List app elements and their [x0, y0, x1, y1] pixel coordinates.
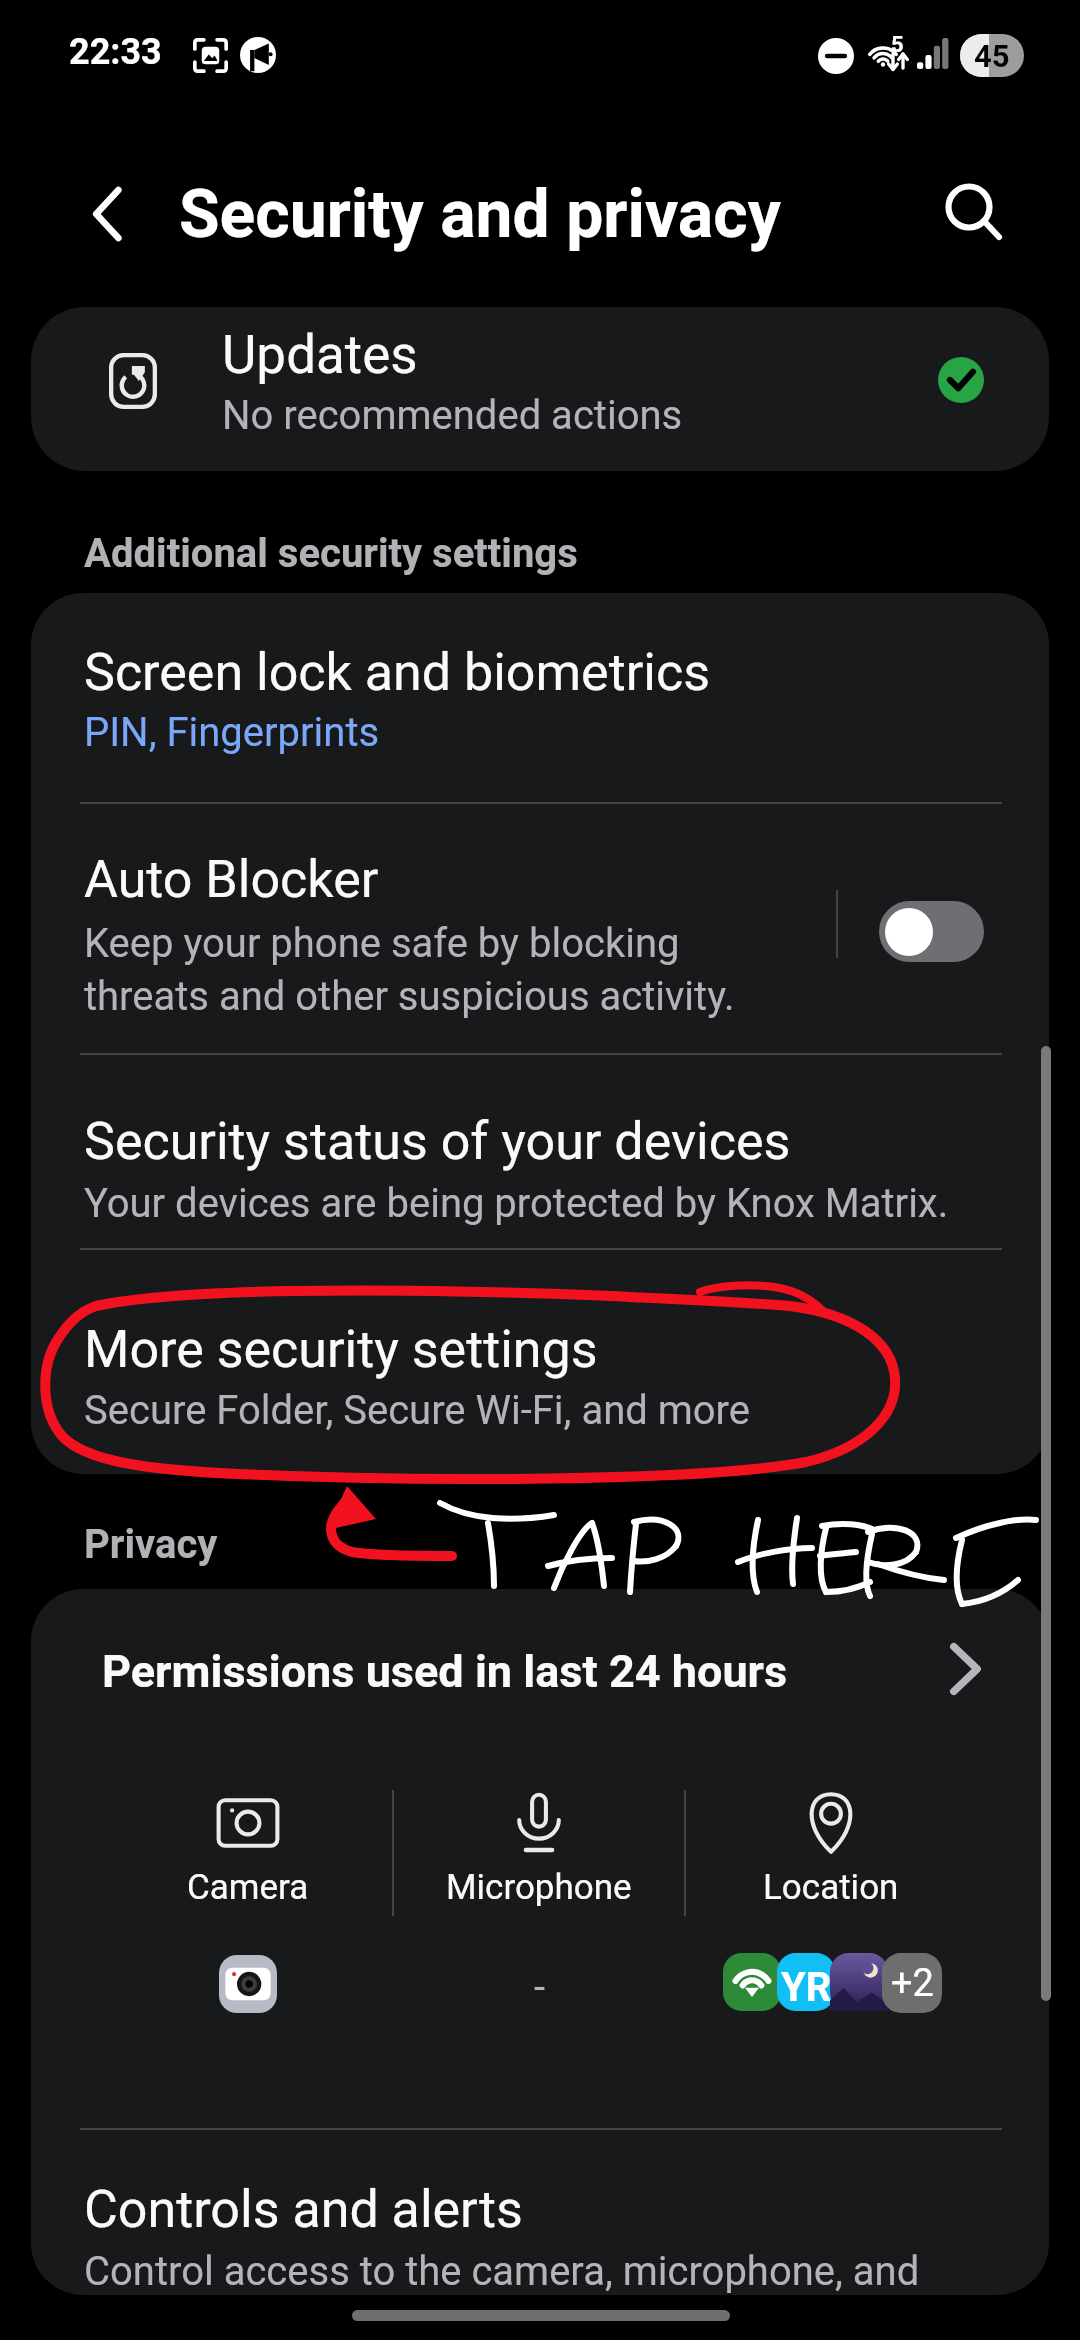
button[interactable]: Search [922, 160, 1018, 256]
staticText: Additional security settings [84, 530, 578, 577]
staticText: No recommended actions [222, 392, 683, 439]
staticText: Updates [222, 324, 418, 386]
staticText: Your devices are being protected by Knox… [84, 1180, 949, 1227]
staticText: Security and privacy [179, 176, 781, 253]
staticText: Permissions used in last 24 hours [102, 1645, 788, 1698]
button[interactable]: Navigate up [59, 166, 155, 262]
button[interactable]: More security settings [31, 1250, 1049, 1474]
staticText: Location [763, 1867, 899, 1908]
button[interactable]: Updates [31, 307, 1049, 471]
staticText: Screen lock and biometrics [84, 642, 711, 703]
staticText: YR [781, 1964, 832, 2011]
button[interactable]: Permissions used in last 24 hours [31, 1589, 1049, 1739]
staticText: Privacy [84, 1521, 218, 1568]
button[interactable]: Auto Blocker toggle [879, 901, 984, 962]
staticText: +2 [891, 1961, 934, 2006]
button[interactable]: Auto Blocker [31, 804, 831, 1053]
staticText: Secure Folder, Secure Wi-Fi, and more [84, 1387, 750, 1434]
staticText: Control access to the camera, microphone… [84, 2248, 920, 2295]
staticText: Auto Blocker [84, 849, 379, 910]
staticText: Security status of your devices [84, 1111, 791, 1172]
staticText: PIN, Fingerprints [84, 709, 380, 756]
button[interactable]: Screen lock and biometrics [31, 593, 1049, 802]
staticText: 5 [891, 32, 904, 58]
button[interactable]: Security status of your devices [31, 1055, 1049, 1248]
staticText: More security settings [84, 1319, 598, 1380]
staticText: Controls and alerts [84, 2179, 523, 2240]
staticText: - [534, 1964, 546, 2011]
staticText: Camera [187, 1867, 309, 1908]
staticText: Microphone [446, 1867, 632, 1908]
staticText: 22:33 [69, 31, 162, 73]
button[interactable]: Camera [128, 1793, 368, 1933]
staticText: 45 [974, 38, 1010, 74]
button[interactable]: Microphone [419, 1793, 659, 1933]
staticText: Keep your phone safe by blocking threats… [84, 920, 735, 1020]
button[interactable]: Location [711, 1793, 951, 1933]
button[interactable]: Controls and alerts [31, 2130, 1049, 2295]
